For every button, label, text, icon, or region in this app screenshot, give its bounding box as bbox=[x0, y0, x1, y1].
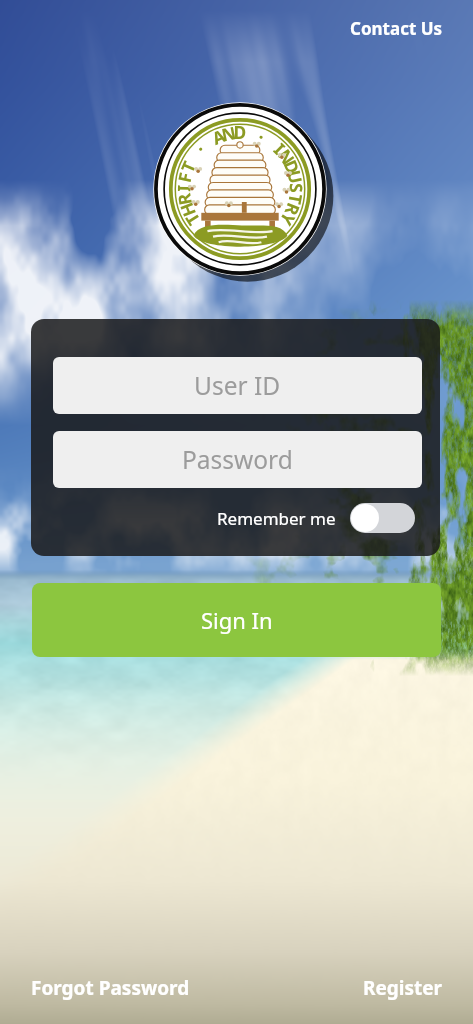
button[interactable]: Forgot Password bbox=[31, 975, 190, 1001]
staticText: Password bbox=[182, 443, 293, 476]
staticText: Register bbox=[363, 975, 443, 1001]
button[interactable]: Register bbox=[363, 975, 443, 1001]
button[interactable]: Password bbox=[53, 431, 422, 488]
button[interactable]: Remember me bbox=[217, 500, 415, 536]
staticText: Contact Us bbox=[350, 17, 443, 40]
staticText: Sign In bbox=[201, 605, 273, 635]
staticText: User ID bbox=[194, 369, 281, 402]
staticText: Forgot Password bbox=[31, 975, 190, 1001]
button[interactable]: Sign In bbox=[32, 583, 441, 657]
button[interactable]: User ID bbox=[53, 357, 422, 414]
staticText: Remember me bbox=[217, 507, 336, 530]
button[interactable]: Contact Us bbox=[350, 17, 443, 40]
